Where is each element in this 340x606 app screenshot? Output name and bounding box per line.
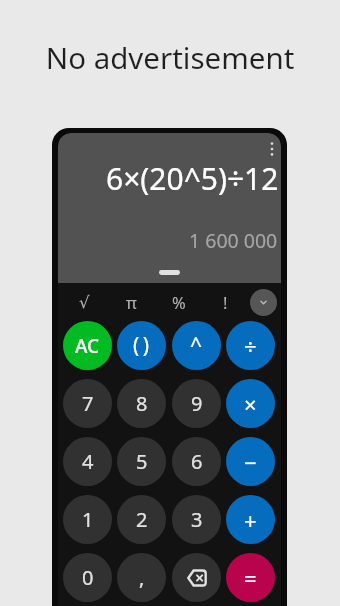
staticText: 3 xyxy=(191,506,203,533)
staticText: π xyxy=(126,291,137,313)
staticText: 0 xyxy=(82,564,94,591)
staticText: − xyxy=(244,447,257,477)
button[interactable]: Percent xyxy=(162,285,196,319)
staticText: AC xyxy=(75,333,100,359)
staticText: 4 xyxy=(82,448,94,475)
button[interactable]: Expand keypad xyxy=(250,289,277,316)
button[interactable]: 5 xyxy=(117,437,166,486)
button[interactable]: , xyxy=(117,553,166,602)
staticText: √ xyxy=(79,293,90,312)
button[interactable]: Pi xyxy=(114,285,148,319)
button[interactable]: Backspace xyxy=(172,553,221,602)
button[interactable]: × xyxy=(226,379,275,428)
button[interactable]: ^ xyxy=(172,321,221,370)
button[interactable]: 2 xyxy=(117,495,166,544)
button[interactable]: ( ) xyxy=(117,321,166,370)
button[interactable]: 0 xyxy=(63,553,112,602)
staticText: 2 xyxy=(136,506,148,533)
staticText: 9 xyxy=(191,390,203,417)
button[interactable]: 6 xyxy=(172,437,221,486)
staticText: 7 xyxy=(82,390,94,417)
staticText: 5 xyxy=(136,448,148,475)
staticText: × xyxy=(244,389,257,419)
staticText: 6 xyxy=(191,448,203,475)
staticText: ÷ xyxy=(244,331,257,361)
staticText: , xyxy=(139,564,145,591)
other: Backspace xyxy=(187,569,207,587)
button[interactable]: + xyxy=(226,495,275,544)
staticText: ( ) xyxy=(133,331,150,360)
button[interactable]: 4 xyxy=(63,437,112,486)
staticText: No advertisement xyxy=(0,37,340,77)
button[interactable]: Factorial xyxy=(208,285,242,319)
staticText: % xyxy=(172,291,186,313)
staticText: ^ xyxy=(190,331,203,360)
staticText: 1 xyxy=(82,506,94,533)
staticText: ! xyxy=(223,291,228,313)
staticText: = xyxy=(244,563,257,593)
button[interactable]: 3 xyxy=(172,495,221,544)
button[interactable]: 1 xyxy=(63,495,112,544)
staticText: + xyxy=(244,505,257,535)
button[interactable]: 9 xyxy=(172,379,221,428)
staticText: 6×(20^5)÷12 xyxy=(106,158,279,199)
button[interactable]: 8 xyxy=(117,379,166,428)
button[interactable]: − xyxy=(226,437,275,486)
button[interactable]: More options xyxy=(262,139,281,159)
button[interactable]: ÷ xyxy=(226,321,275,370)
staticText: 8 xyxy=(136,390,148,417)
button[interactable]: = xyxy=(226,553,275,602)
button[interactable]: AC xyxy=(63,321,112,370)
button[interactable]: 7 xyxy=(63,379,112,428)
staticText: 1 600 000 xyxy=(189,227,278,254)
button[interactable]: Square root xyxy=(67,285,101,319)
